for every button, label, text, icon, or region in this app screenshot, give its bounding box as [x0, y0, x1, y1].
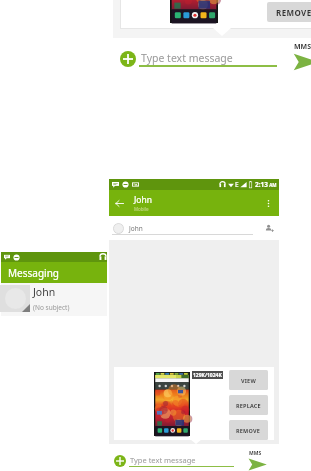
button[interactable]: Add attachment — [120, 51, 136, 67]
staticText: REMOVE — [276, 7, 311, 18]
button[interactable]: More options — [261, 196, 276, 211]
staticText: E — [235, 180, 239, 189]
button[interactable]: REPLACE — [229, 395, 268, 415]
staticText: REPLACE — [236, 402, 261, 409]
button[interactable]: Navigate up — [112, 196, 127, 211]
staticText: John — [33, 285, 56, 299]
staticText: MMS — [249, 450, 262, 457]
staticText: (No subject) — [33, 303, 70, 312]
staticText: John — [134, 194, 152, 206]
staticText: VIEW — [241, 377, 256, 384]
button[interactable]: Add attachment — [114, 455, 126, 467]
staticText: MMS — [294, 42, 311, 52]
button[interactable]: John — [1, 283, 107, 316]
staticText: Type text message — [130, 455, 196, 465]
staticText: 2:13 — [255, 180, 268, 189]
staticText: AM — [268, 182, 277, 188]
button[interactable]: VIEW — [229, 370, 268, 390]
staticText: Messaging — [8, 266, 59, 280]
staticText: John — [129, 224, 143, 233]
button[interactable]: Send — [293, 53, 311, 71]
button[interactable]: REMOVE — [267, 2, 311, 22]
button[interactable]: REMOVE — [229, 420, 268, 440]
staticText: Mobile — [134, 206, 149, 212]
staticText: REMOVE — [236, 427, 261, 434]
button[interactable]: Add recipient — [263, 222, 276, 235]
staticText: 129K/1024K — [193, 372, 222, 379]
staticText: Type text message — [141, 51, 233, 65]
button[interactable]: Send — [248, 458, 267, 471]
